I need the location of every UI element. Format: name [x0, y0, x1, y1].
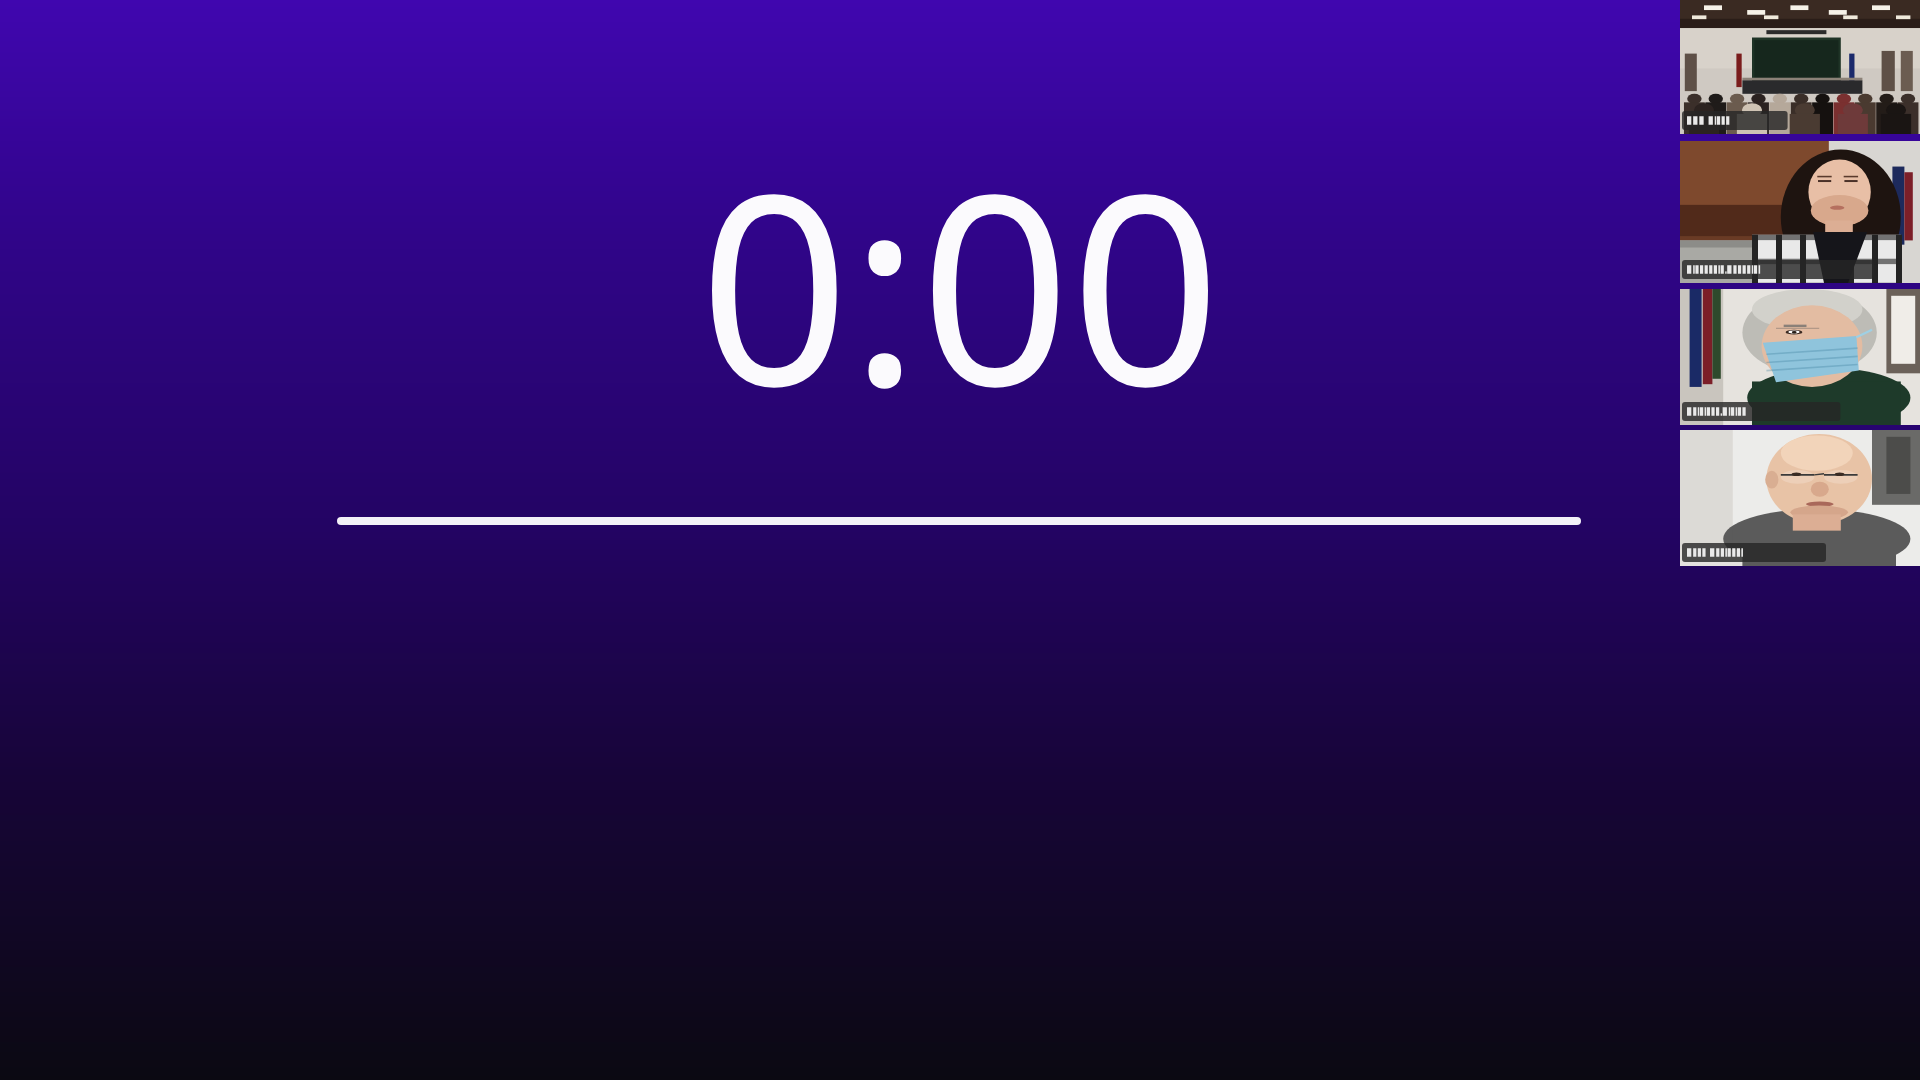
staticText: 0:00 — [0, 104, 1920, 462]
button[interactable]: Timer 0:00 — [0, 0, 1920, 1080]
other: Participant video thumbnails — [0, 0, 1920, 1080]
